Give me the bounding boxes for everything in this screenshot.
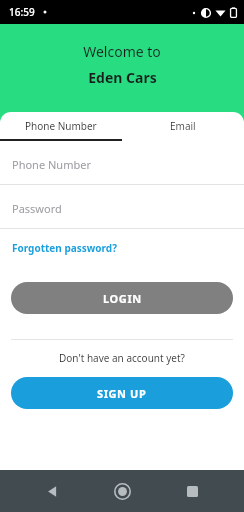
button[interactable]: Home: [104, 473, 140, 509]
staticText: Password: [12, 201, 62, 216]
staticText: LOGIN: [103, 291, 142, 306]
staticText: SIGN UP: [97, 386, 147, 401]
staticText: Email: [170, 119, 196, 133]
button[interactable]: Sign up: [11, 377, 233, 409]
staticText: 16:59: [9, 5, 35, 19]
button[interactable]: Email: [122, 112, 244, 139]
staticText: Don't have an account yet?: [59, 351, 185, 365]
button[interactable]: Phone Number: [0, 151, 244, 185]
button[interactable]: Password: [0, 195, 244, 229]
staticText: Phone Number: [12, 157, 91, 172]
staticText: Welcome to: [83, 42, 161, 61]
button[interactable]: Recent apps: [174, 473, 210, 509]
staticText: Phone Number: [25, 119, 97, 133]
staticText: Forgotten password?: [12, 241, 117, 255]
button[interactable]: Login: [11, 282, 233, 314]
staticText: Eden Cars: [88, 68, 157, 87]
button[interactable]: Back: [34, 473, 70, 509]
button[interactable]: Phone Number: [0, 112, 122, 139]
button[interactable]: Forgotten password?: [12, 241, 117, 255]
